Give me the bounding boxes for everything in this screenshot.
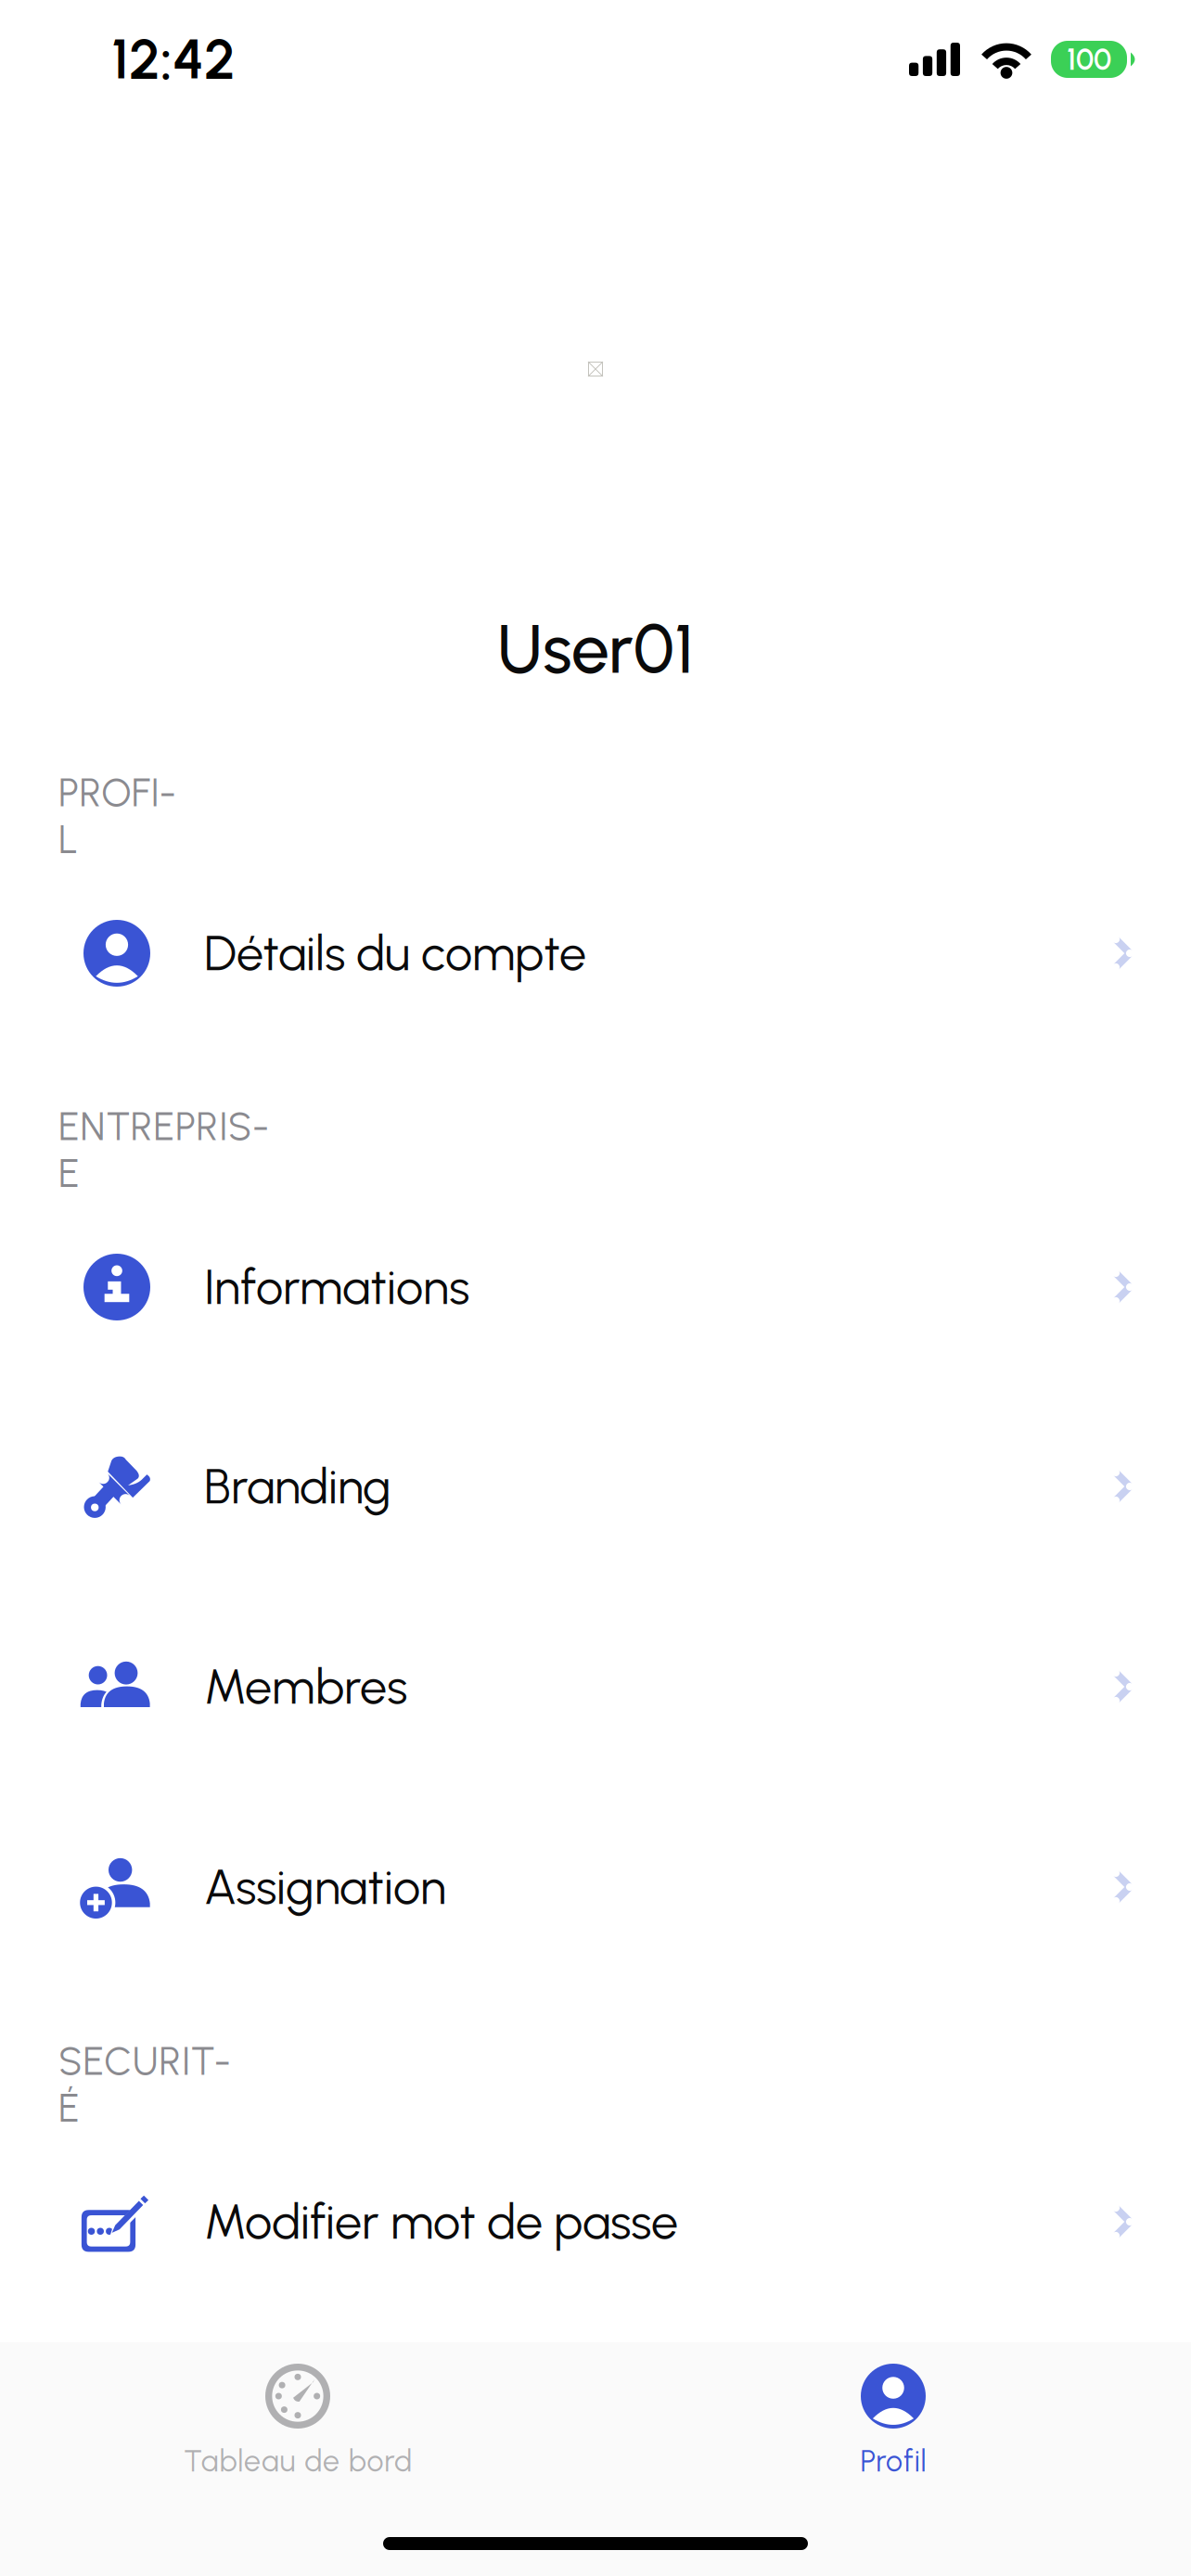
- staticText: User01: [497, 608, 694, 690]
- staticText: SECURITÉ: [58, 2038, 231, 2131]
- staticText: 12:42: [111, 26, 236, 93]
- button[interactable]: Assignation: [0, 1813, 1191, 1961]
- staticText: Membres: [204, 1658, 407, 1716]
- staticText: PROFIL: [58, 769, 176, 863]
- button[interactable]: Informations: [0, 1213, 1191, 1361]
- image: [588, 362, 603, 376]
- staticText: ENTREPRISE: [58, 1103, 269, 1197]
- staticText: Assignation: [204, 1858, 446, 1916]
- button[interactable]: Détails du compte: [0, 879, 1191, 1027]
- button[interactable]: Tableau de bord: [0, 2342, 595, 2576]
- button[interactable]: Profil: [595, 2342, 1191, 2576]
- button[interactable]: Membres: [0, 1613, 1191, 1761]
- button[interactable]: Modifier mot de passe: [0, 2148, 1191, 2296]
- staticText: Informations: [204, 1258, 469, 1316]
- staticText: 100: [1067, 42, 1111, 77]
- staticText: Branding: [204, 1458, 391, 1515]
- staticText: Profil: [860, 2443, 926, 2479]
- staticText: Tableau de bord: [184, 2443, 412, 2479]
- staticText: Modifier mot de passe: [204, 2193, 678, 2251]
- staticText: Détails du compte: [204, 924, 586, 982]
- button[interactable]: Branding: [0, 1412, 1191, 1561]
